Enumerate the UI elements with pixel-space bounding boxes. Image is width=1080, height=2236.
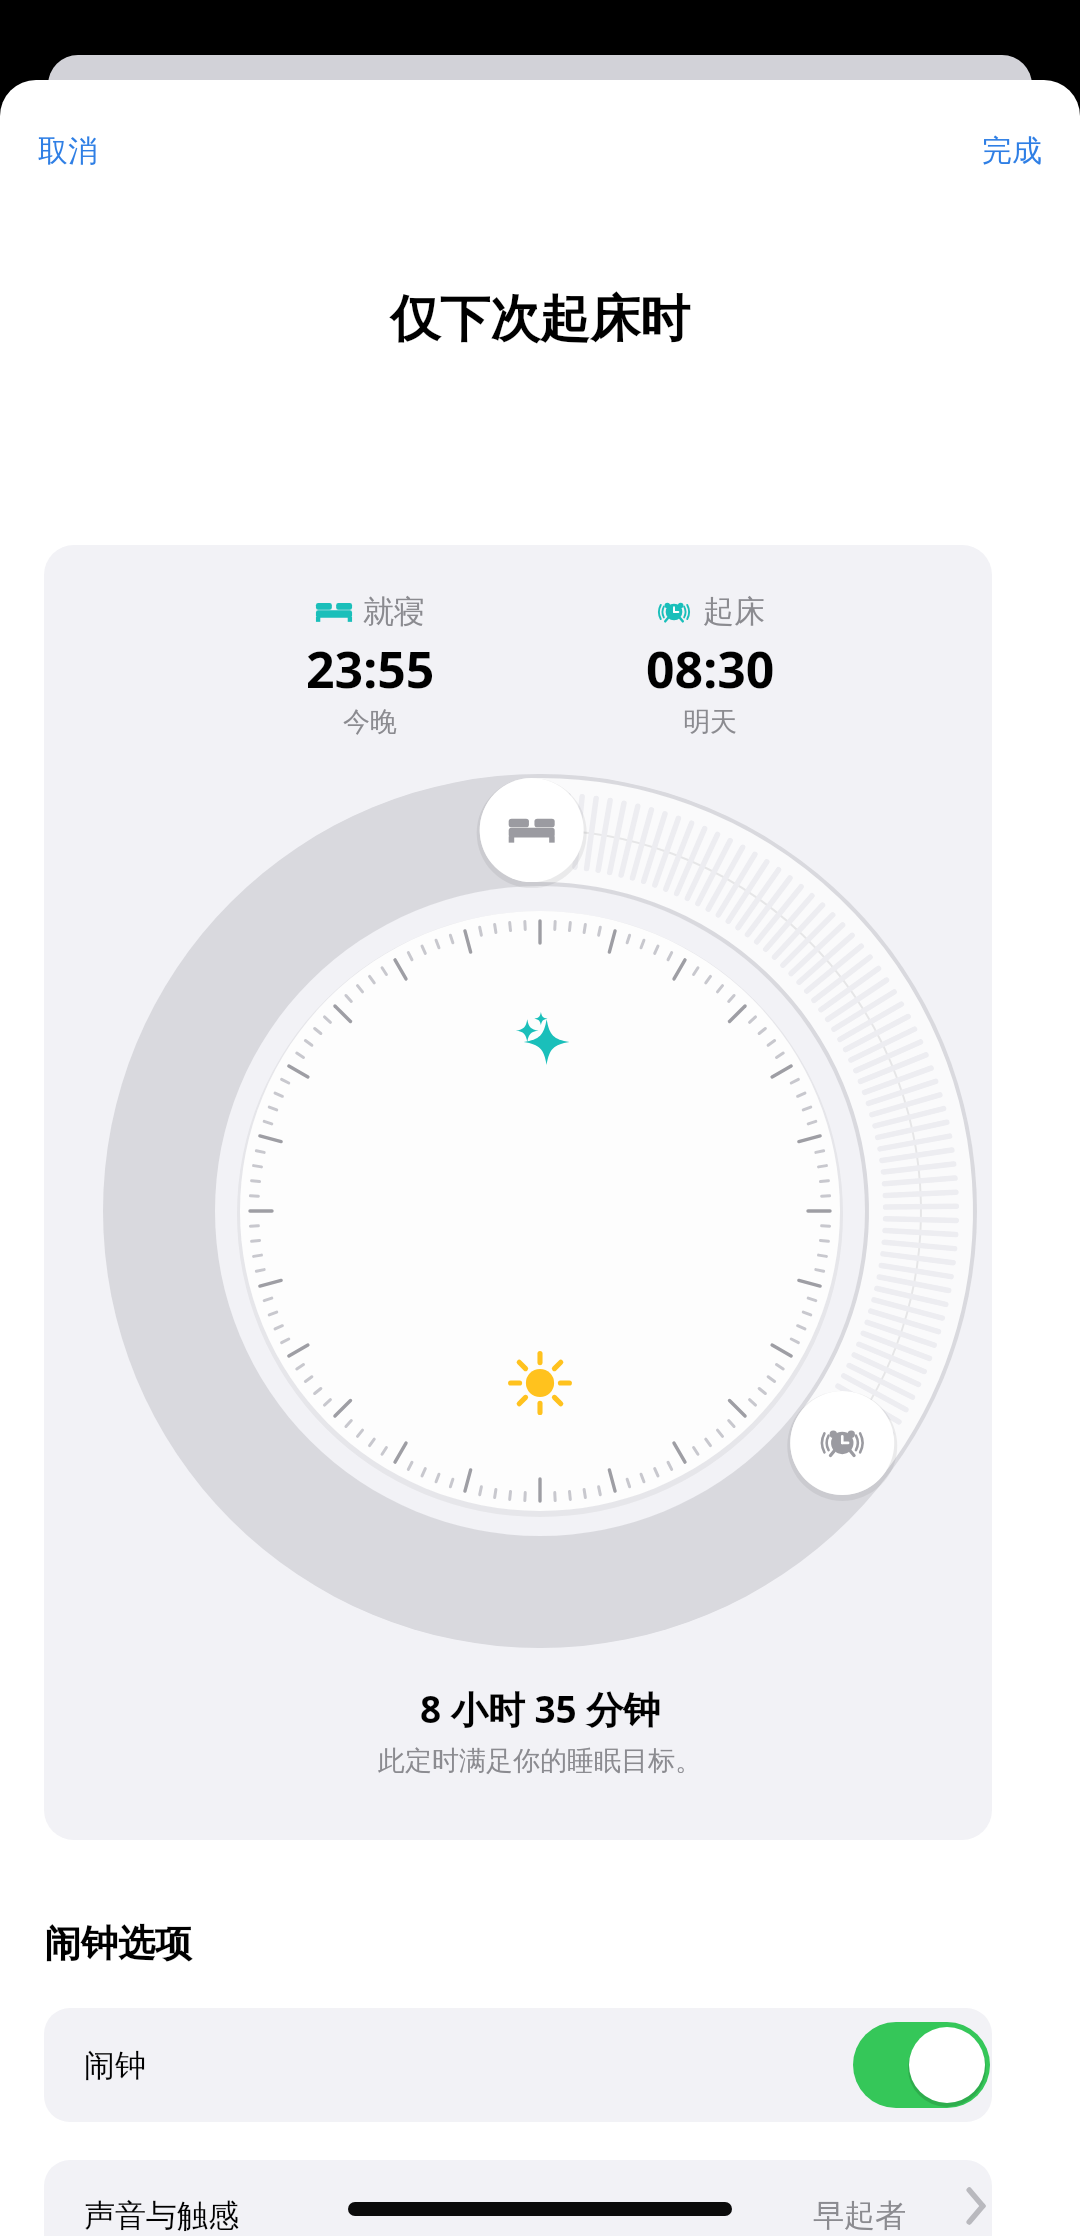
staticText: 仅下次起床时 <box>390 288 690 351</box>
button[interactable]: 取消 <box>32 126 104 176</box>
staticText: 23:55 <box>306 635 435 703</box>
staticText: 起床 <box>703 592 765 631</box>
staticText: 声音与触感 <box>84 2196 239 2235</box>
button[interactable]: 声音与触感 <box>44 2160 992 2236</box>
staticText: 此定时满足你的睡眠目标。 <box>378 1744 702 1778</box>
staticText: 明天 <box>683 705 737 739</box>
button[interactable]: Wake up handle <box>728 1352 844 1468</box>
button[interactable]: 完成 <box>976 126 1048 176</box>
staticText: 取消 <box>38 132 98 170</box>
staticText: 完成 <box>982 132 1042 170</box>
staticText: 就寝 <box>363 592 425 631</box>
staticText: 闹钟 <box>84 2046 146 2085</box>
staticText: 闹钟选项 <box>44 1920 192 1967</box>
button[interactable]: 闹钟 <box>44 2008 992 2122</box>
button[interactable]: Bedtime handle <box>330 772 446 888</box>
staticText: 今晚 <box>343 705 397 739</box>
staticText: 8 小时 35 分钟 <box>420 1683 661 1734</box>
staticText: 08:30 <box>646 635 775 703</box>
staticText: 早起者 <box>813 2196 906 2235</box>
